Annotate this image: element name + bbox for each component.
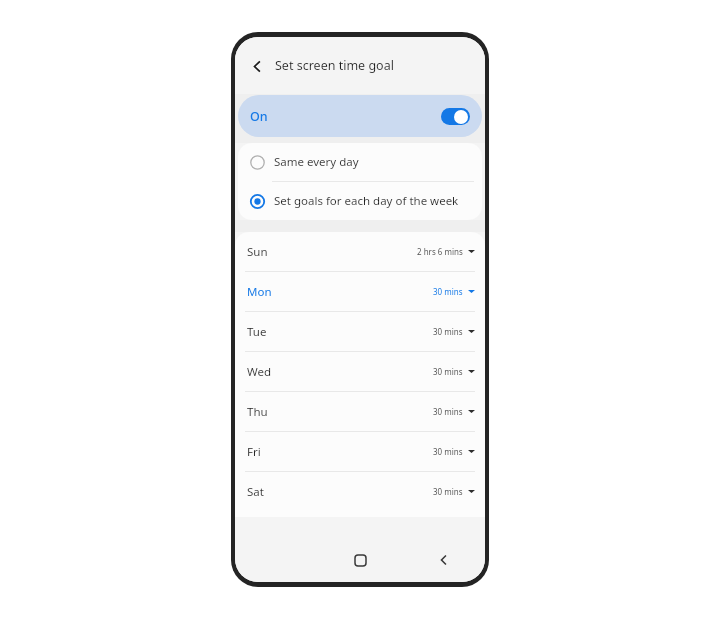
button[interactable]: Tue	[235, 312, 485, 351]
button[interactable]: Back	[244, 53, 270, 79]
staticText: Set screen time goal	[275, 57, 394, 74]
button[interactable]: Thu	[235, 392, 485, 431]
button[interactable]: Same every day	[238, 143, 482, 181]
staticText: Tue	[247, 324, 267, 340]
staticText: Set goals for each day of the week	[274, 193, 459, 209]
staticText: 30 mins	[433, 326, 463, 337]
staticText: 2 hrs 6 mins	[417, 246, 463, 257]
staticText: Sun	[247, 244, 268, 260]
staticText: Sat	[247, 484, 264, 500]
staticText: 30 mins	[433, 486, 463, 497]
button[interactable]: Wed	[235, 352, 485, 391]
button[interactable]: Set goals for each day of the week	[238, 182, 482, 220]
staticText: 30 mins	[433, 446, 463, 457]
staticText: Thu	[247, 404, 268, 420]
staticText: Fri	[247, 444, 261, 460]
button[interactable]: Sun	[235, 232, 485, 271]
staticText: On	[250, 108, 268, 125]
staticText: 30 mins	[433, 406, 463, 417]
button[interactable]: On	[238, 95, 482, 137]
button[interactable]: Fri	[235, 432, 485, 471]
staticText: Mon	[247, 284, 272, 300]
button[interactable]: Home	[319, 542, 402, 578]
staticText: Same every day	[274, 154, 359, 170]
button[interactable]: Mon	[235, 272, 485, 311]
staticText: Wed	[247, 364, 272, 380]
button[interactable]: Sat	[235, 472, 485, 511]
staticText: 30 mins	[433, 286, 463, 297]
staticText: 30 mins	[433, 366, 463, 377]
button[interactable]: Back	[402, 542, 485, 578]
